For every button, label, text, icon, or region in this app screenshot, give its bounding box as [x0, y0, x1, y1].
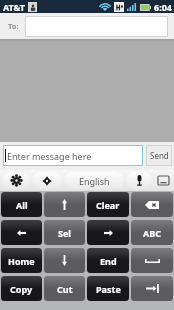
button[interactable]: DOWN — [44, 248, 85, 273]
staticText: To: — [8, 21, 19, 31]
staticText: ABC — [143, 227, 161, 239]
staticText: Paste — [96, 283, 121, 295]
staticText: Clear — [96, 199, 120, 211]
button[interactable]: Settings — [2, 172, 30, 189]
button[interactable]: Clear — [87, 192, 129, 217]
button[interactable]: Keyboard settings — [154, 172, 172, 189]
button[interactable]: Home — [1, 248, 42, 273]
button[interactable]: TAB — [131, 276, 173, 301]
staticText: AT&T — [3, 1, 26, 13]
button[interactable]: UP — [44, 192, 85, 217]
button[interactable]: English — [64, 172, 124, 189]
staticText: English — [79, 175, 110, 187]
staticText: 6:04 — [154, 1, 172, 13]
button[interactable]: Voice input — [126, 172, 152, 189]
button[interactable]: Move cursor — [32, 172, 62, 189]
button[interactable]: Enter message here — [3, 145, 143, 166]
staticText: Copy — [10, 283, 33, 295]
button[interactable]: BKSP — [131, 192, 173, 217]
button[interactable]: Copy — [1, 276, 42, 301]
button[interactable]: All — [1, 192, 42, 217]
button[interactable]: End — [87, 248, 129, 273]
button[interactable]: Paste — [87, 276, 129, 301]
staticText: Sel — [58, 227, 72, 239]
button[interactable]: Cut — [44, 276, 85, 301]
button[interactable]: Send — [146, 145, 172, 166]
button[interactable]: LEFT — [1, 220, 42, 245]
button[interactable]: ABC — [131, 220, 173, 245]
button[interactable]: RIGHT — [87, 220, 129, 245]
staticText: Home — [8, 255, 35, 267]
button[interactable]: SPACE — [131, 248, 173, 273]
staticText: Send — [150, 150, 169, 161]
staticText: Enter message here — [7, 150, 92, 162]
staticText: Cut — [57, 283, 73, 295]
button[interactable] — [25, 16, 168, 37]
staticText: End — [100, 255, 117, 267]
button[interactable]: Sel — [44, 220, 85, 245]
staticText: All — [16, 199, 28, 211]
